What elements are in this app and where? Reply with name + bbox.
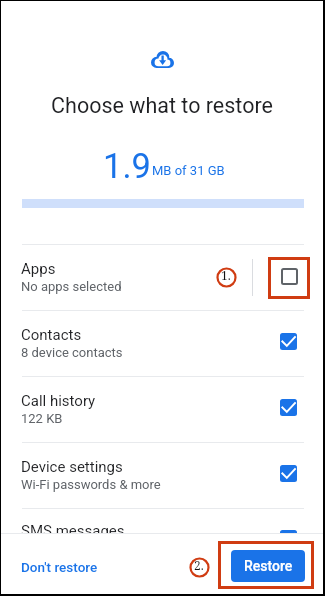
staticText: Wi-Fi passwords & more	[21, 477, 161, 492]
button[interactable]: Checkbox	[281, 268, 298, 285]
staticText: Restore	[244, 558, 293, 574]
button[interactable]: Call history	[1, 377, 323, 442]
button[interactable]: Checkbox	[280, 333, 297, 350]
button[interactable]: Don't restore	[21, 559, 98, 575]
staticText: Device settings	[21, 458, 123, 476]
staticText: 122 KB	[21, 411, 63, 426]
staticText: Contacts	[21, 326, 82, 344]
staticText: Apps	[21, 260, 56, 278]
button[interactable]: Checkbox	[280, 530, 297, 547]
button[interactable]: Apps	[1, 245, 323, 310]
button[interactable]: Contacts	[1, 311, 323, 376]
button[interactable]: Device settings	[1, 443, 323, 508]
staticText: Don't restore	[21, 559, 98, 575]
staticText: No apps selected	[21, 279, 122, 294]
staticText: MB of 31 GB	[152, 163, 225, 178]
other: Cloud download	[151, 51, 174, 68]
staticText: SMS messages	[21, 522, 280, 540]
button[interactable]: SMS messages	[1, 508, 323, 538]
staticText: 8 device contacts	[21, 345, 123, 360]
staticText: Choose what to restore	[1, 93, 323, 118]
staticText: 1.9	[103, 146, 151, 186]
staticText: Call history	[21, 392, 96, 410]
button[interactable]: Checkbox	[280, 399, 297, 416]
button[interactable]: Checkbox	[280, 465, 297, 482]
button[interactable]: Restore	[231, 550, 305, 582]
staticText: 1.	[221, 267, 231, 283]
staticText: 2.	[194, 557, 204, 573]
